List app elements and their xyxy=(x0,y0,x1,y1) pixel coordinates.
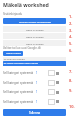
button[interactable]: Valitse työpaja xyxy=(3,51,23,56)
staticText: Open in Google xyxy=(26,35,44,38)
staticText: Valitse tai luo uusi Google-tili xyxy=(3,46,41,50)
button[interactable]: Quantity xyxy=(48,70,55,76)
button[interactable]: Tai lisää uusi työpaja xyxy=(3,57,66,61)
button[interactable]: Kirjaudu sisään Google-tilillä xyxy=(3,18,66,24)
staticText: 1 xyxy=(36,71,38,75)
staticText: 3. xyxy=(69,28,73,33)
button[interactable]: Quantity xyxy=(48,99,55,105)
button[interactable]: Sell kategori systeemiä xyxy=(3,87,66,96)
button[interactable]: Open in Google xyxy=(3,40,66,46)
button[interactable]: Open in Google xyxy=(3,26,66,32)
button[interactable]: Quantity xyxy=(48,89,55,95)
button[interactable]: Tallenna xyxy=(3,109,66,116)
button[interactable]: Open in Google xyxy=(3,33,66,39)
staticText: 4. xyxy=(69,34,73,39)
staticText: Sell kategori systeemiä xyxy=(3,81,34,85)
button[interactable]: Quantity xyxy=(48,80,55,86)
staticText: 9. xyxy=(69,88,73,93)
staticText: Tai valitse olemassa oleva työpaja xyxy=(3,62,38,65)
staticText: 1 xyxy=(36,100,38,104)
staticText: Sell kategori systeemiä xyxy=(3,90,34,94)
button[interactable]: Sell kategori systeemiä xyxy=(3,78,66,87)
staticText: Open in Google xyxy=(26,28,44,31)
staticText: 2. xyxy=(69,21,73,26)
staticText: 5. xyxy=(69,41,73,46)
button[interactable]: Sell kategori systeemiä xyxy=(3,97,66,106)
staticText: 1 xyxy=(36,81,38,85)
staticText: 1. xyxy=(69,14,73,19)
staticText: 10. xyxy=(69,104,75,109)
staticText: Valitse työpaja xyxy=(6,52,21,55)
staticText: Open in Google xyxy=(26,42,44,45)
staticText: Sell kategori systeemiä xyxy=(3,71,34,75)
staticText: Tai lisää uusi työpaja xyxy=(3,58,25,61)
staticText: Tallenna xyxy=(29,111,40,115)
staticText: 8. xyxy=(69,78,73,83)
staticText: Sell kategori systeemiä xyxy=(3,100,34,104)
staticText: Mäkelä workshed xyxy=(3,1,49,8)
staticText: 7. xyxy=(69,69,73,74)
staticText: Kirjaudu sisään Google-tilillä xyxy=(19,20,51,23)
staticText: Sisäänkirjaudu xyxy=(3,12,23,16)
button[interactable]: Sell kategori systeemiä xyxy=(3,68,66,77)
staticText: 6. xyxy=(69,48,73,53)
staticText: 1 xyxy=(36,90,38,94)
button[interactable]: Tai valitse olemassa oleva työpaja xyxy=(3,61,66,66)
